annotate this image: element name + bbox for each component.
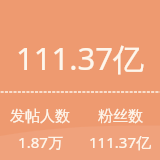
staticText: 1.87万 [18, 132, 63, 152]
staticText: 111.37亿 [89, 132, 151, 152]
staticText: 111.37亿 [16, 37, 144, 79]
staticText: 发帖人数 [10, 107, 70, 126]
button[interactable]: 发帖人数 [0, 107, 80, 152]
button[interactable]: 粉丝数 [80, 107, 160, 152]
staticText: 粉丝数 [98, 107, 143, 126]
